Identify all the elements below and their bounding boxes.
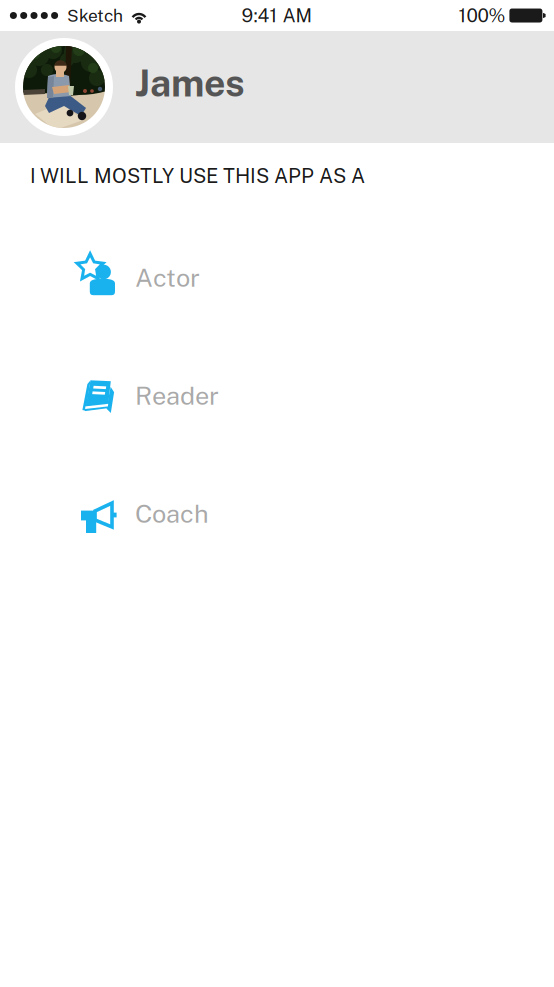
staticText: 9:41 AM	[241, 4, 312, 26]
button[interactable]: James	[0, 31, 554, 143]
staticText: 100%	[458, 4, 505, 26]
button[interactable]: Actor	[0, 248, 554, 306]
staticText: Reader	[135, 381, 219, 410]
staticText: James	[135, 61, 245, 105]
staticText: Actor	[135, 263, 200, 292]
button[interactable]: Reader	[0, 366, 554, 424]
staticText: I WILL MOSTLY USE THIS APP AS A	[30, 164, 365, 187]
staticText: Coach	[135, 499, 209, 528]
button[interactable]: Coach	[0, 484, 554, 542]
staticText: Sketch	[67, 5, 123, 26]
